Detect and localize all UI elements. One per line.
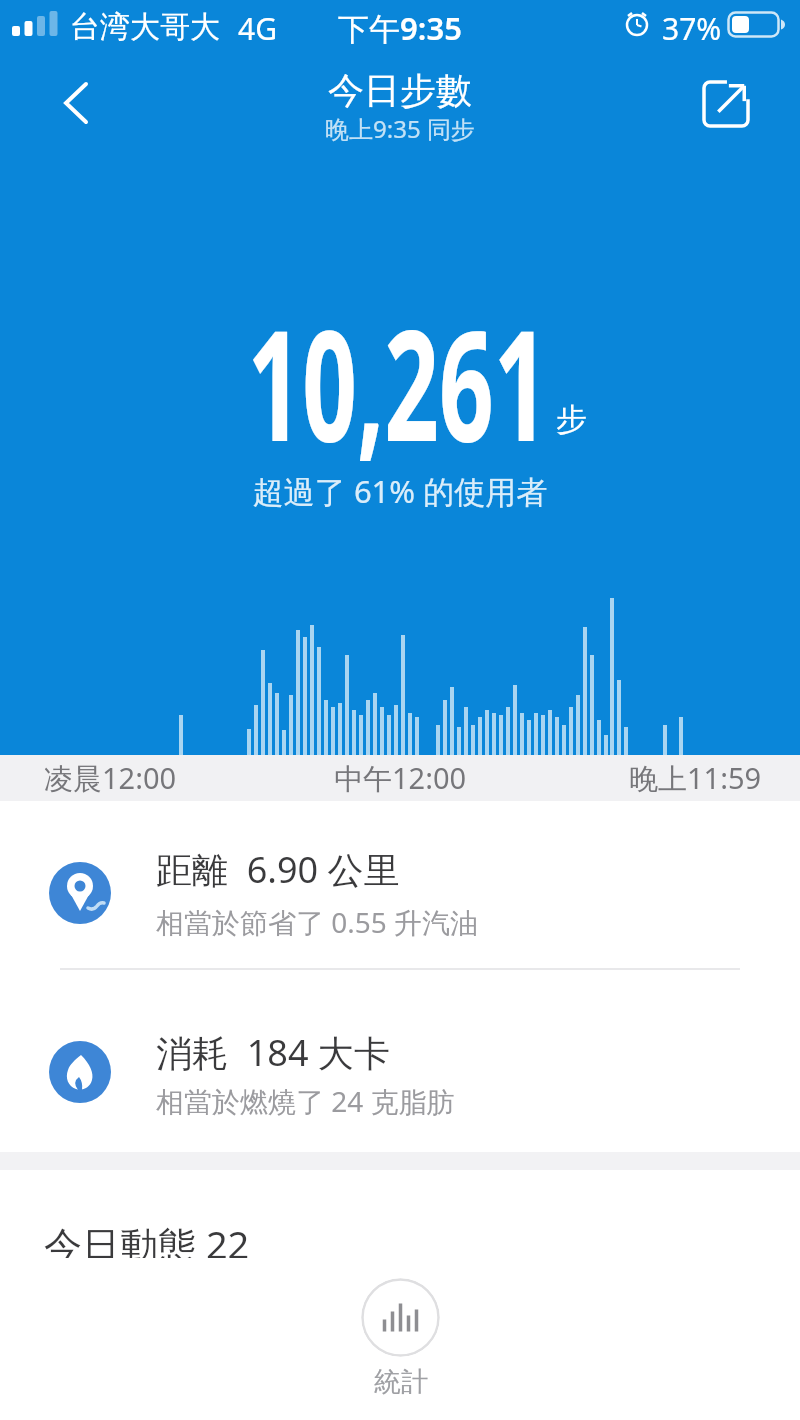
staticText: 統計 — [374, 1365, 428, 1399]
staticText: 超過了 61% 的使用者 — [0, 470, 800, 512]
staticText: 4G — [238, 8, 277, 49]
staticText: 37% — [662, 8, 722, 49]
staticText: 凌晨12:00 — [44, 758, 177, 798]
staticText: 今日步數 — [0, 68, 800, 113]
staticText: 步 — [556, 400, 587, 439]
button[interactable] — [693, 71, 759, 137]
staticText: 中午12:00 — [334, 758, 467, 798]
staticText: 距離 6.90 公里 — [156, 845, 400, 894]
staticText: 今日動態 22 — [44, 1218, 250, 1270]
button[interactable]: 距離 6.90 公里 — [0, 810, 800, 968]
button[interactable]: 消耗 184 大卡 — [0, 970, 800, 1138]
staticText: 晚上9:35 同步 — [0, 112, 800, 145]
staticText: 台湾大哥大 — [70, 8, 220, 46]
staticText: 消耗 184 大卡 — [156, 1028, 390, 1077]
staticText: 晚上11:59 — [629, 758, 762, 798]
staticText: 相當於節省了 0.55 升汽油 — [156, 903, 479, 941]
staticText: 相當於燃燒了 24 克脂肪 — [156, 1082, 455, 1120]
button[interactable] — [40, 70, 110, 136]
staticText: 下午9:35 — [0, 7, 800, 49]
staticText: 10,261 — [146, 279, 650, 486]
button[interactable]: 統計 — [361, 1258, 440, 1399]
